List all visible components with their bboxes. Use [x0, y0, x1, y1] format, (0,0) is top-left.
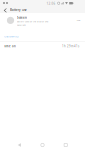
staticText: Time on — [4, 44, 16, 48]
staticText: USE DETAILS — [4, 35, 18, 38]
staticText: Battery use — [10, 8, 27, 12]
staticText: backlight — [17, 24, 26, 26]
staticText: 12:06 — [46, 2, 55, 6]
button[interactable]: Back — [15, 141, 23, 149]
button[interactable]: Battery use — [0, 8, 40, 14]
button[interactable]: USE DETAILS — [2, 33, 20, 40]
staticText: 1h 29m 41s — [62, 44, 79, 48]
staticText: Battery used by the display and — [17, 20, 48, 23]
button[interactable]: Recent apps — [62, 141, 69, 149]
button[interactable]: Home — [39, 141, 46, 149]
staticText: 11% — [76, 19, 80, 22]
staticText: Screen — [17, 16, 27, 20]
